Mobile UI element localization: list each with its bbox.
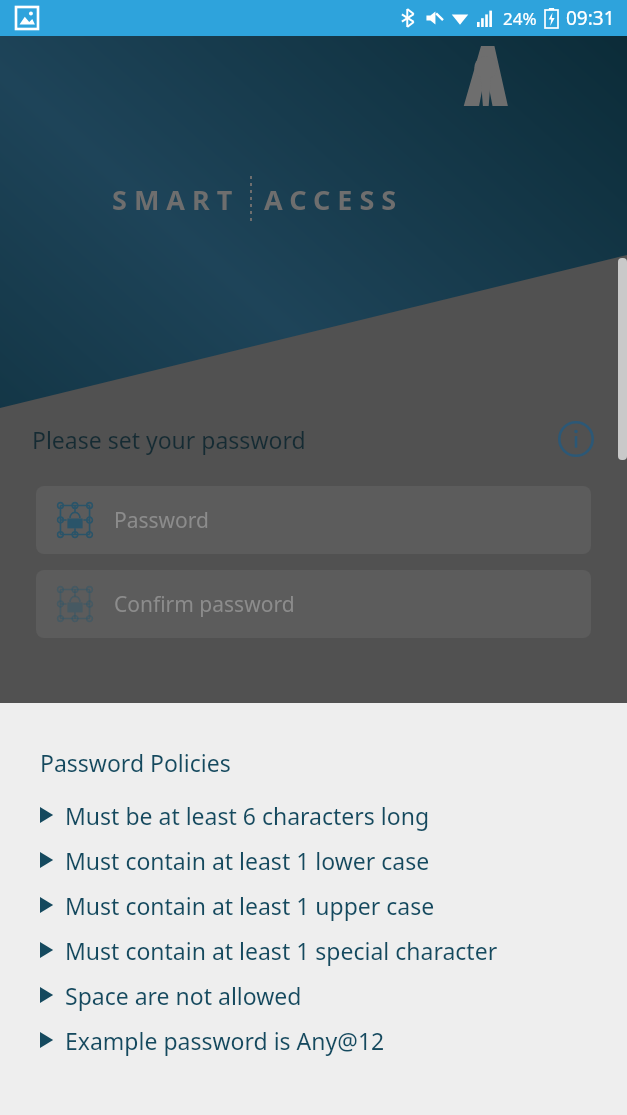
staticText: Must be at least 6 characters long	[65, 800, 430, 831]
staticText: Please set your password	[32, 424, 306, 455]
staticText: Password Policies	[40, 747, 231, 778]
button[interactable]: Confirm password	[36, 570, 591, 638]
staticText: 09:31	[566, 5, 615, 31]
staticText: Password	[114, 506, 209, 535]
button[interactable]: Must contain at least 1 lower case	[40, 845, 607, 876]
staticText: SMART	[112, 181, 240, 218]
button[interactable]: Password	[36, 486, 591, 554]
staticText: Confirm password	[114, 590, 295, 619]
staticText: Must contain at least 1 special characte…	[65, 935, 498, 966]
staticText: Must contain at least 1 upper case	[65, 890, 435, 921]
button[interactable]: Must contain at least 1 upper case	[40, 890, 607, 921]
button[interactable]: Must contain at least 1 special characte…	[40, 935, 607, 966]
button[interactable]: Example password is Any@12	[40, 1025, 607, 1056]
button[interactable]: Password policy info	[555, 418, 597, 460]
staticText: 24%	[503, 7, 537, 30]
staticText: Must contain at least 1 lower case	[65, 845, 430, 876]
staticText: Space are not allowed	[65, 980, 302, 1011]
staticText: ACCESS	[264, 181, 404, 218]
button[interactable]: Must be at least 6 characters long	[40, 800, 607, 831]
staticText: Example password is Any@12	[65, 1025, 385, 1056]
button[interactable]: Space are not allowed	[40, 980, 607, 1011]
